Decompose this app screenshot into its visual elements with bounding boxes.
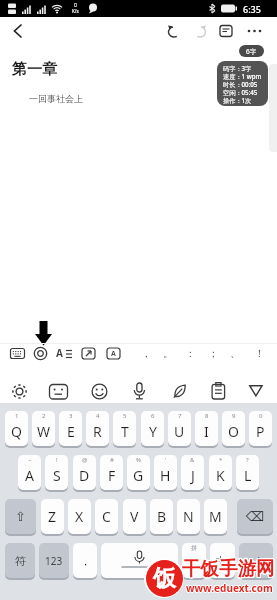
button[interactable]: M xyxy=(204,499,227,534)
staticText: ~ xyxy=(28,456,32,464)
staticText: ' xyxy=(165,456,167,464)
staticText: 干饭手游网 xyxy=(183,556,276,579)
button[interactable]: 6 xyxy=(141,411,164,446)
button[interactable]: 7 xyxy=(168,411,191,446)
button[interactable]: 符 xyxy=(5,543,35,578)
button[interactable]: 2 xyxy=(32,411,55,446)
button[interactable] xyxy=(248,384,264,399)
button[interactable]: ！ xyxy=(250,344,268,362)
staticText: ， xyxy=(80,554,91,568)
button[interactable]: 0 xyxy=(249,411,272,446)
button[interactable] xyxy=(11,383,28,400)
staticText: 6字 xyxy=(246,47,257,56)
button[interactable]: A xyxy=(106,346,121,361)
button[interactable]: A xyxy=(56,346,74,361)
button[interactable]: * xyxy=(209,455,232,490)
staticText: 干饭手游网 xyxy=(181,557,274,580)
staticText: 。 xyxy=(163,347,174,360)
staticText: 8 xyxy=(205,412,209,420)
button[interactable]: ↵ xyxy=(239,543,273,578)
staticText: A xyxy=(25,466,34,485)
staticText: X xyxy=(75,507,84,526)
button[interactable]: 1 xyxy=(5,411,28,446)
button[interactable]: X xyxy=(68,499,91,534)
staticText: 干饭手游网 xyxy=(183,557,276,580)
staticText: 干饭手游网 xyxy=(181,556,274,579)
button[interactable] xyxy=(10,22,26,40)
button[interactable]: 5 xyxy=(113,411,136,446)
button[interactable]: # xyxy=(100,455,123,490)
button[interactable] xyxy=(218,23,234,39)
button[interactable]: ： xyxy=(181,344,199,362)
staticText: ！ xyxy=(254,347,265,360)
button[interactable] xyxy=(10,347,25,360)
staticText: 3 xyxy=(69,412,73,420)
button[interactable]: ， xyxy=(137,344,155,362)
staticText: 0 xyxy=(259,412,263,420)
staticText: www.eduext.com xyxy=(186,581,273,595)
staticText: 、 xyxy=(230,347,241,360)
staticText: 9 xyxy=(232,412,236,420)
staticText: Y xyxy=(149,422,157,441)
staticText: 空闲：05:45 xyxy=(223,88,258,96)
button[interactable]: ' xyxy=(154,455,177,490)
button[interactable]: ? xyxy=(236,455,259,490)
button[interactable]: 4 xyxy=(86,411,109,446)
button[interactable]: 。 xyxy=(159,344,177,362)
button[interactable]: ~ xyxy=(18,455,41,490)
button[interactable]: ； xyxy=(204,344,222,362)
button[interactable]: ⌫ xyxy=(237,499,273,534)
button[interactable]: C xyxy=(95,499,118,534)
button[interactable]: & xyxy=(181,455,204,490)
staticText: 第一章 xyxy=(12,60,57,79)
staticText: 干饭手游网 xyxy=(182,557,275,580)
staticText: 操作：1次 xyxy=(223,96,252,104)
staticText: P xyxy=(256,422,265,441)
button[interactable]: 中 xyxy=(210,543,235,578)
button[interactable]: 拼 xyxy=(182,543,206,578)
button[interactable] xyxy=(246,23,264,39)
button[interactable]: Z xyxy=(41,499,64,534)
staticText: ⌫ xyxy=(246,509,265,524)
button[interactable] xyxy=(81,346,96,361)
button[interactable] xyxy=(132,382,147,401)
button[interactable]: 8 xyxy=(195,411,218,446)
staticText: # xyxy=(110,456,114,464)
button[interactable]: ! xyxy=(45,455,68,490)
button[interactable]: 9 xyxy=(222,411,245,446)
staticText: 6:35 xyxy=(243,3,261,15)
staticText: 干饭手游网 xyxy=(182,558,275,581)
button[interactable]: @ xyxy=(73,455,96,490)
button[interactable]: 6字 xyxy=(239,45,264,57)
button[interactable]: ， xyxy=(73,543,97,578)
staticText: G xyxy=(133,466,144,485)
staticText: www.eduext.com xyxy=(186,582,273,596)
button[interactable] xyxy=(101,543,178,578)
staticText: 0 xyxy=(74,2,77,9)
button[interactable] xyxy=(166,24,182,38)
button[interactable]: V xyxy=(123,499,146,534)
staticText: 4 xyxy=(96,412,100,420)
button[interactable]: % xyxy=(127,455,150,490)
staticText: www.eduext.com xyxy=(187,581,274,595)
staticText: ? xyxy=(246,456,249,464)
button[interactable]: 、 xyxy=(226,344,244,362)
button[interactable]: 123 xyxy=(39,543,69,578)
button[interactable]: ⇧ xyxy=(5,499,36,534)
staticText: 时长：00:05 xyxy=(223,80,258,88)
staticText: ， xyxy=(141,347,152,360)
button[interactable] xyxy=(33,346,48,361)
staticText: 拼 xyxy=(191,544,197,552)
button[interactable]: B xyxy=(150,499,173,534)
button[interactable]: 3 xyxy=(59,411,82,446)
button[interactable] xyxy=(171,383,188,400)
button[interactable] xyxy=(91,383,108,400)
staticText: ： xyxy=(185,347,196,360)
staticText: 符 xyxy=(15,554,26,568)
staticText: 饭 xyxy=(153,564,176,593)
button[interactable] xyxy=(49,384,68,400)
button[interactable]: N xyxy=(177,499,200,534)
staticText: 干饭手游网 xyxy=(182,556,275,579)
button[interactable] xyxy=(192,24,208,38)
button[interactable] xyxy=(211,382,226,400)
